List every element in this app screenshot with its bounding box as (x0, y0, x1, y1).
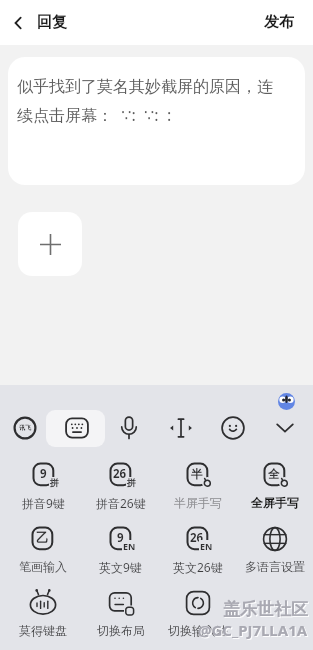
staticText: 发布 (264, 13, 294, 32)
button[interactable]: 切换输入法 (159, 586, 236, 650)
staticText: 全屏手写 (251, 495, 299, 510)
staticText: EN (200, 540, 213, 552)
staticText: 全 (268, 467, 280, 481)
button[interactable]: 全 (236, 458, 313, 522)
staticText: 回复 (37, 13, 67, 32)
staticText: 英文9键 (99, 559, 142, 575)
staticText: 乙 (36, 530, 49, 546)
staticText: 莫得键盘 (19, 623, 67, 638)
staticText: 拼音9键 (22, 495, 65, 511)
staticText: 半 (191, 467, 203, 481)
staticText: EN (123, 540, 136, 552)
staticText: 似乎找到了莫名其妙截屏的原因，连 续点击屏幕： ∵: ∵: : (17, 77, 273, 126)
button[interactable]: 发布 (264, 13, 313, 32)
button[interactable] (264, 407, 306, 449)
staticText: 多语言设置 (245, 559, 305, 574)
button[interactable]: 讯飞 (4, 407, 46, 449)
button[interactable] (236, 586, 313, 650)
button[interactable]: 多语言设置 (236, 522, 313, 586)
button[interactable]: 半 (159, 458, 236, 522)
button[interactable]: 回复 (0, 13, 67, 32)
button[interactable]: 似乎找到了莫名其妙截屏的原因，连 续点击屏幕： ∵: ∵: : (8, 57, 305, 185)
staticText: 拼 (127, 477, 136, 488)
button[interactable] (56, 407, 98, 449)
button[interactable]: 乙 (4, 522, 82, 586)
staticText: @GC_PJ7LLA1A (198, 620, 308, 640)
button[interactable]: 切换布局 (82, 586, 159, 650)
staticText: 切换布局 (97, 623, 145, 638)
staticText: 盖乐世社区 (223, 599, 308, 620)
staticText: 26 (190, 530, 204, 546)
staticText: 半屏手写 (174, 495, 222, 510)
button[interactable] (108, 407, 150, 449)
staticText: 笔画输入 (19, 559, 67, 574)
button[interactable] (212, 407, 254, 449)
staticText: 讯飞 (19, 424, 31, 432)
staticText: 切换输入法 (168, 623, 228, 638)
button[interactable]: 莫得键盘 (4, 586, 82, 650)
button[interactable]: 9 (4, 458, 82, 522)
button[interactable]: 26 (82, 458, 159, 522)
button[interactable]: 9 (82, 522, 159, 586)
button[interactable]: 26 (159, 522, 236, 586)
button[interactable] (18, 212, 82, 276)
button[interactable] (160, 407, 202, 449)
staticText: 26 (113, 466, 127, 482)
staticText: 9 (117, 530, 124, 546)
staticText: 拼音26键 (96, 495, 146, 511)
staticText: 英文26键 (173, 559, 223, 575)
staticText: @GC_PJ7LLA1A (199, 621, 309, 641)
staticText: 9 (40, 466, 47, 482)
staticText: 拼 (50, 477, 59, 488)
staticText: 盖乐世社区 (224, 600, 309, 621)
